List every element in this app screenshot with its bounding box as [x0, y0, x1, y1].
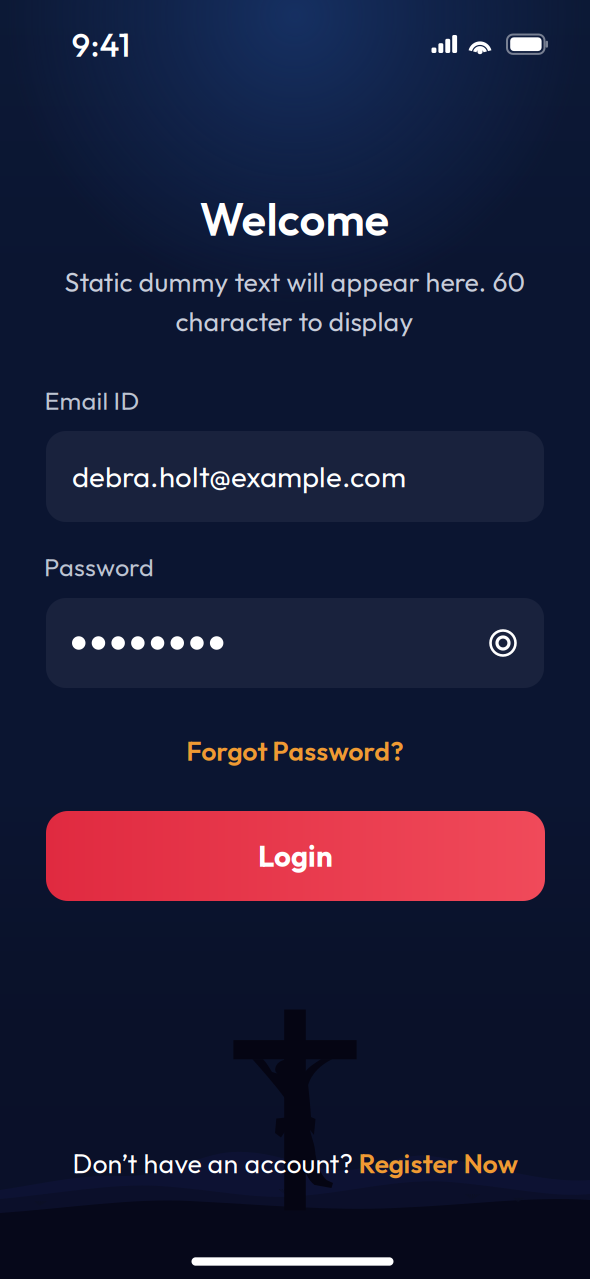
- staticText: 9:41: [71, 23, 130, 65]
- staticText: Register Now: [359, 1147, 519, 1180]
- staticText: Don’t have an account?: [73, 1147, 359, 1180]
- button[interactable]: Forgot Password?: [165, 729, 425, 773]
- staticText: debra.holt@example.com: [72, 458, 406, 495]
- staticText: Login: [258, 837, 333, 874]
- staticText: Static dummy text will appear here. 60: [64, 265, 524, 299]
- staticText: Password: [44, 551, 154, 583]
- staticText: Forgot Password?: [186, 734, 403, 768]
- button[interactable]: Login: [46, 811, 545, 901]
- button[interactable]: Show password: [488, 629, 518, 657]
- staticText: character to display: [175, 305, 413, 338]
- staticText: Email ID: [44, 384, 139, 416]
- button[interactable]: Don’t have an account?: [73, 1143, 519, 1183]
- staticText: Welcome: [199, 190, 389, 247]
